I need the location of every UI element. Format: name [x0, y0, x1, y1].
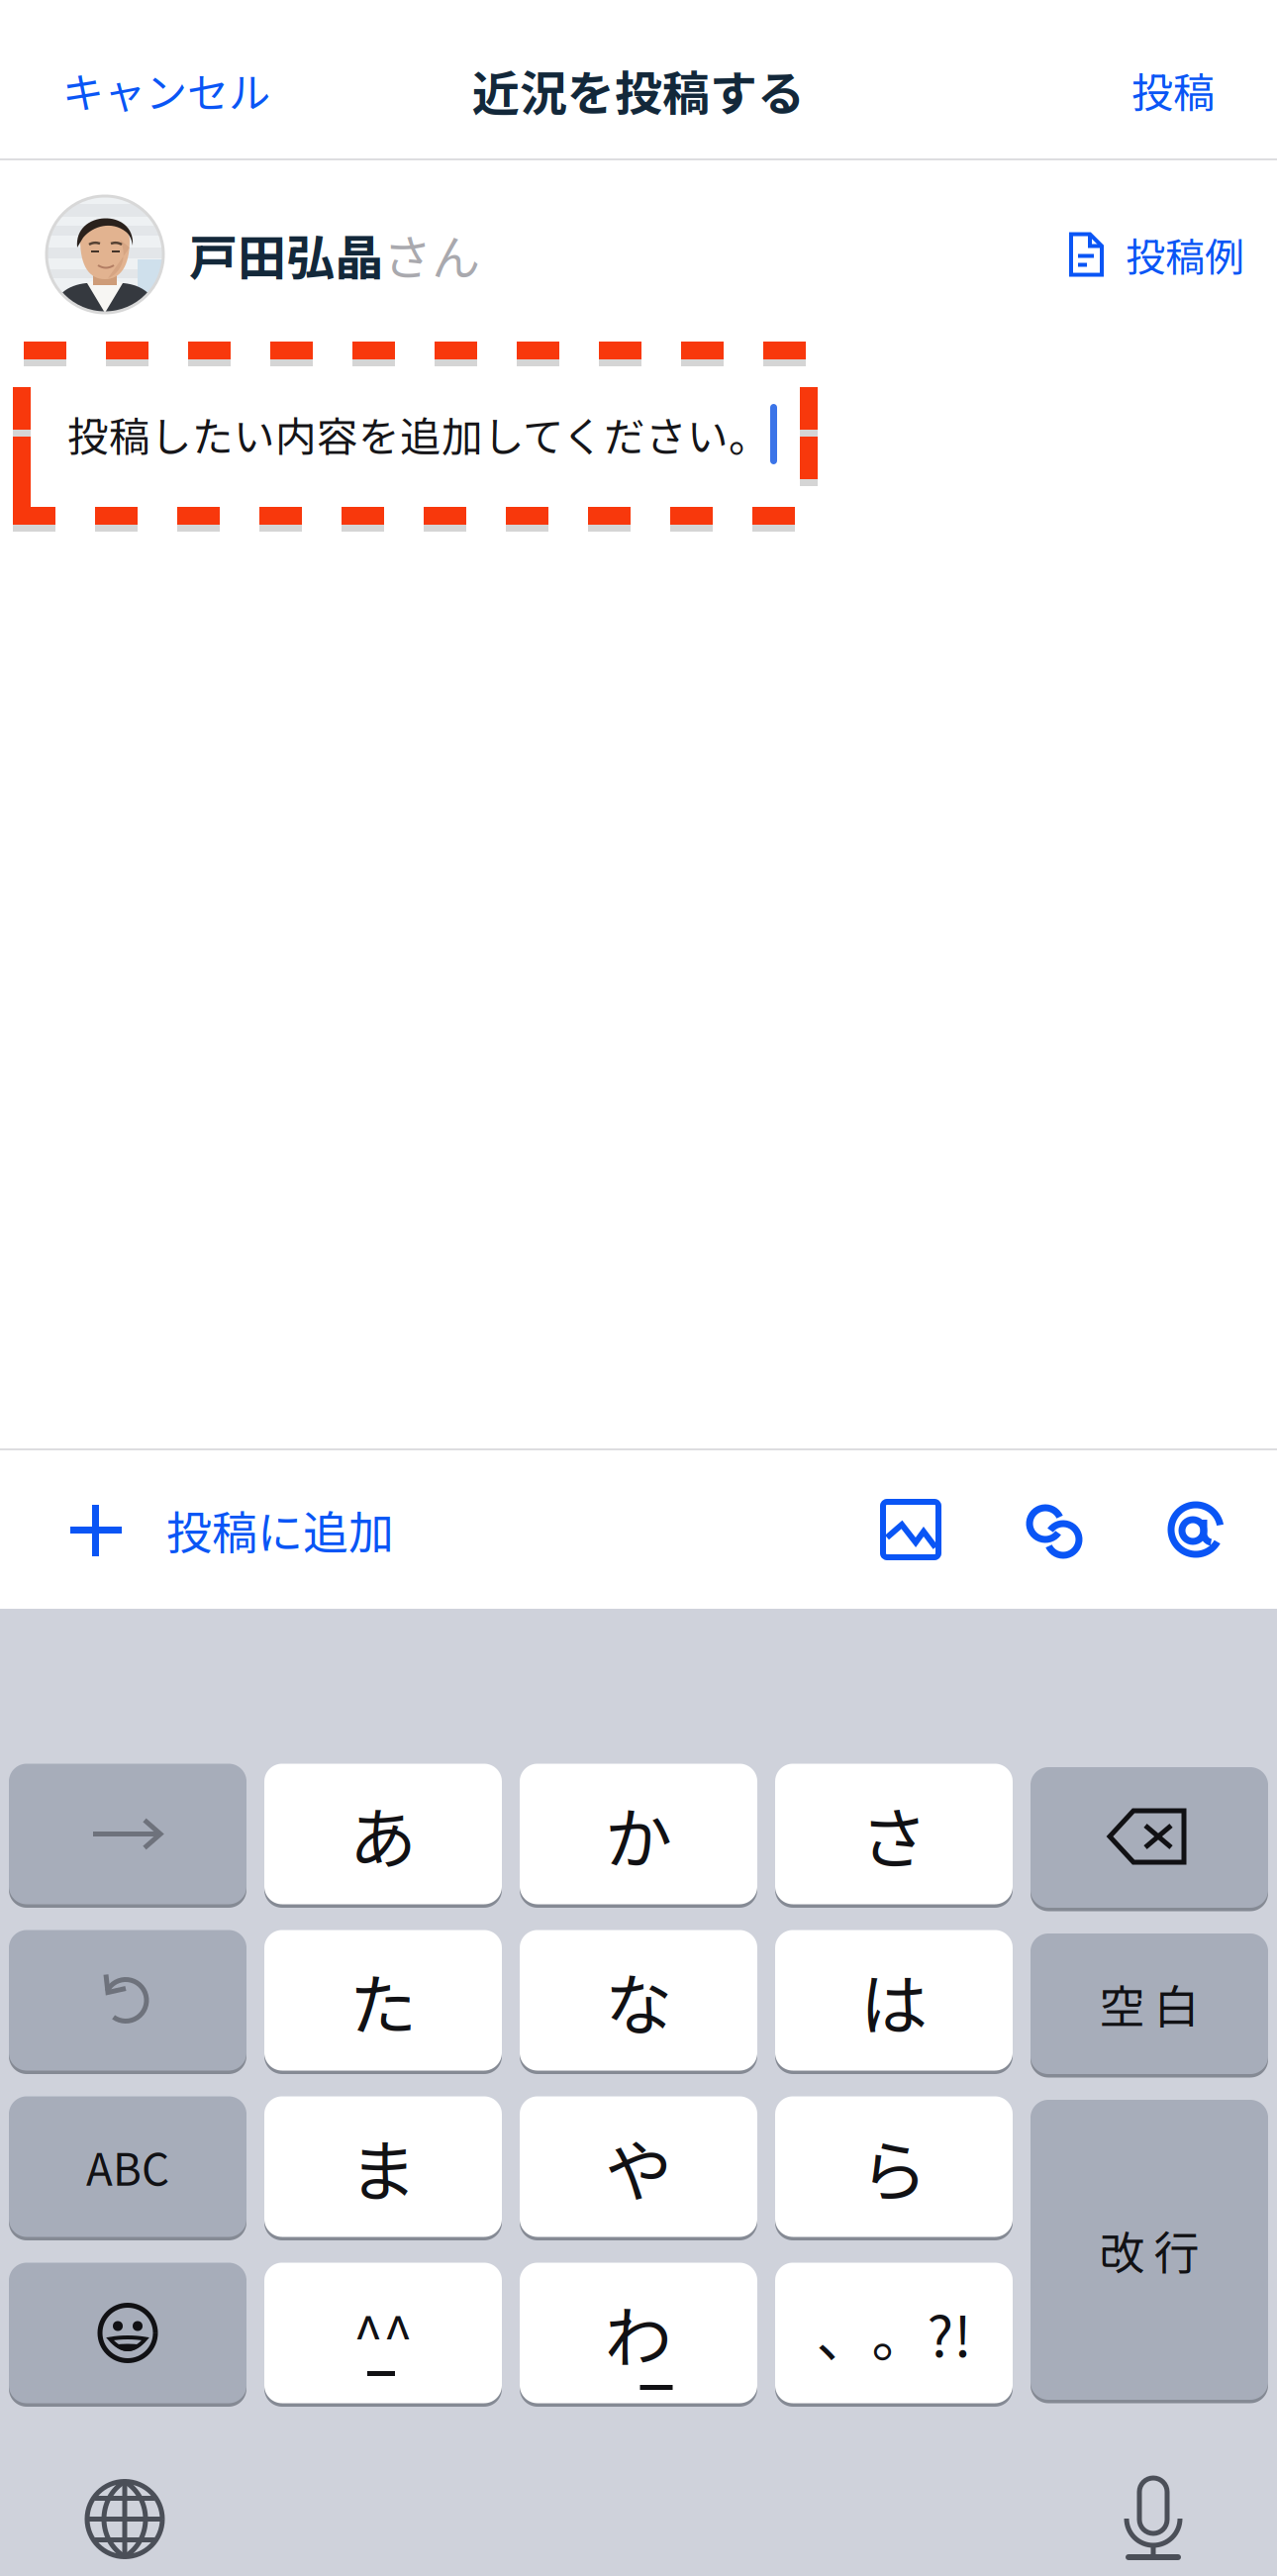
staticText: 改行	[1099, 2217, 1199, 2283]
button[interactable]: 改行	[1031, 2096, 1268, 2403]
button[interactable]: ^^	[264, 2259, 502, 2407]
button[interactable]: リンクを追加	[1004, 1480, 1103, 1579]
staticText: ま	[349, 2118, 417, 2215]
button[interactable]: あ	[264, 1760, 502, 1908]
button[interactable]: さ	[775, 1760, 1013, 1908]
staticText: や	[605, 2118, 672, 2215]
staticText: 近況を投稿する	[472, 56, 805, 124]
staticText: か	[605, 1785, 672, 1883]
staticText: は	[860, 1952, 928, 2049]
button[interactable]: は	[775, 1927, 1013, 2074]
button[interactable]: 音声入力	[1110, 2462, 1197, 2576]
staticText: 投稿したい内容を追加してください。	[67, 404, 770, 464]
staticText: ^^	[353, 2294, 413, 2372]
staticText: 投稿例	[1126, 226, 1244, 283]
button[interactable]: ABC	[9, 2093, 246, 2240]
button[interactable]	[9, 1760, 246, 1908]
button[interactable]: ら	[775, 2093, 1013, 2240]
button[interactable]: わ	[520, 2259, 757, 2407]
button[interactable]: 空白	[1031, 1930, 1268, 2078]
button[interactable]: 写真を追加	[861, 1480, 960, 1579]
button[interactable]: キャンセル	[45, 46, 288, 134]
button[interactable]: か	[520, 1760, 757, 1908]
staticText: 、。?!	[816, 2293, 972, 2373]
button[interactable]	[9, 1927, 246, 2074]
staticText: 投稿に追加	[166, 1497, 394, 1563]
staticText: た	[349, 1952, 417, 2049]
staticText: 空白	[1099, 1971, 1199, 2037]
button[interactable]: な	[520, 1927, 757, 2074]
staticText: ら	[860, 2118, 928, 2215]
staticText: さん	[383, 219, 480, 290]
staticText: 戸田弘晶	[189, 219, 383, 290]
button[interactable]: 投稿例	[1069, 210, 1244, 299]
staticText: な	[605, 1952, 672, 2049]
staticText: キャンセル	[62, 60, 270, 120]
button[interactable]: 、。?!	[775, 2259, 1013, 2407]
button[interactable]	[1031, 1764, 1268, 1911]
button[interactable]: た	[264, 1927, 502, 2074]
button[interactable]: ま	[264, 2093, 502, 2240]
button[interactable]: 投稿に追加	[70, 1471, 394, 1588]
button[interactable]	[9, 2259, 246, 2407]
staticText: さ	[860, 1785, 928, 1883]
button[interactable]: や	[520, 2093, 757, 2240]
button[interactable]: キーボード切替	[69, 2464, 180, 2575]
staticText: ABC	[86, 2135, 169, 2198]
staticText: 投稿	[1131, 60, 1215, 120]
button[interactable]: メンション	[1146, 1480, 1245, 1579]
button[interactable]: 投稿	[1114, 46, 1232, 134]
staticText: あ	[349, 1785, 417, 1883]
staticText: わ	[605, 2284, 672, 2382]
